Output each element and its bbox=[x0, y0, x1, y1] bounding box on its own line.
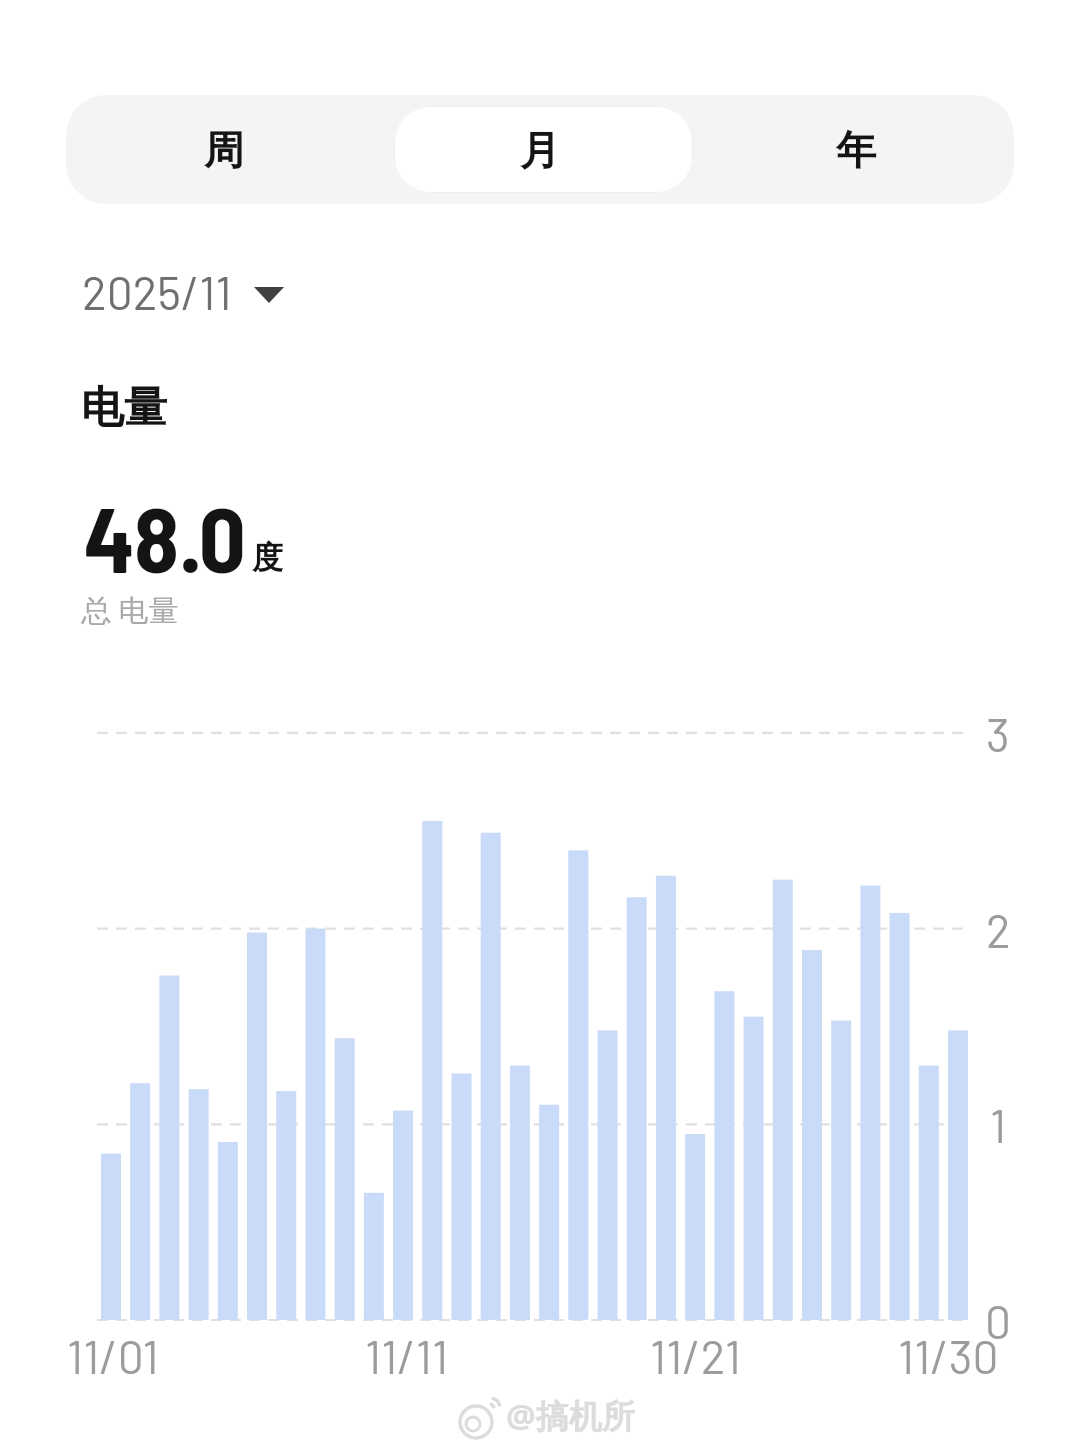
staticText: 11/30 bbox=[898, 1328, 999, 1380]
button[interactable]: 2025/11 bbox=[82, 264, 284, 319]
staticText: 2025/11 bbox=[82, 264, 232, 319]
staticText: @搞机所 bbox=[506, 1393, 635, 1438]
staticText: 月 bbox=[520, 125, 560, 175]
staticText: 电量 bbox=[81, 381, 167, 435]
staticText: 2 bbox=[986, 902, 1011, 957]
staticText: 1 bbox=[990, 1097, 1007, 1152]
staticText: 年 bbox=[836, 125, 876, 175]
staticText: 11/01 bbox=[67, 1328, 159, 1380]
staticText: 度 bbox=[252, 538, 283, 577]
staticText: 0 bbox=[985, 1293, 1011, 1348]
button[interactable]: 周 bbox=[66, 95, 382, 204]
staticText: 11/11 bbox=[365, 1328, 449, 1380]
staticText: 3 bbox=[986, 706, 1010, 761]
staticText: 总 电量 bbox=[81, 589, 179, 630]
button[interactable]: 年 bbox=[698, 95, 1014, 204]
staticText: 48.0 bbox=[84, 481, 246, 591]
staticText: 周 bbox=[204, 125, 244, 175]
staticText: 11/21 bbox=[650, 1328, 741, 1380]
button[interactable]: 月 bbox=[382, 95, 698, 204]
